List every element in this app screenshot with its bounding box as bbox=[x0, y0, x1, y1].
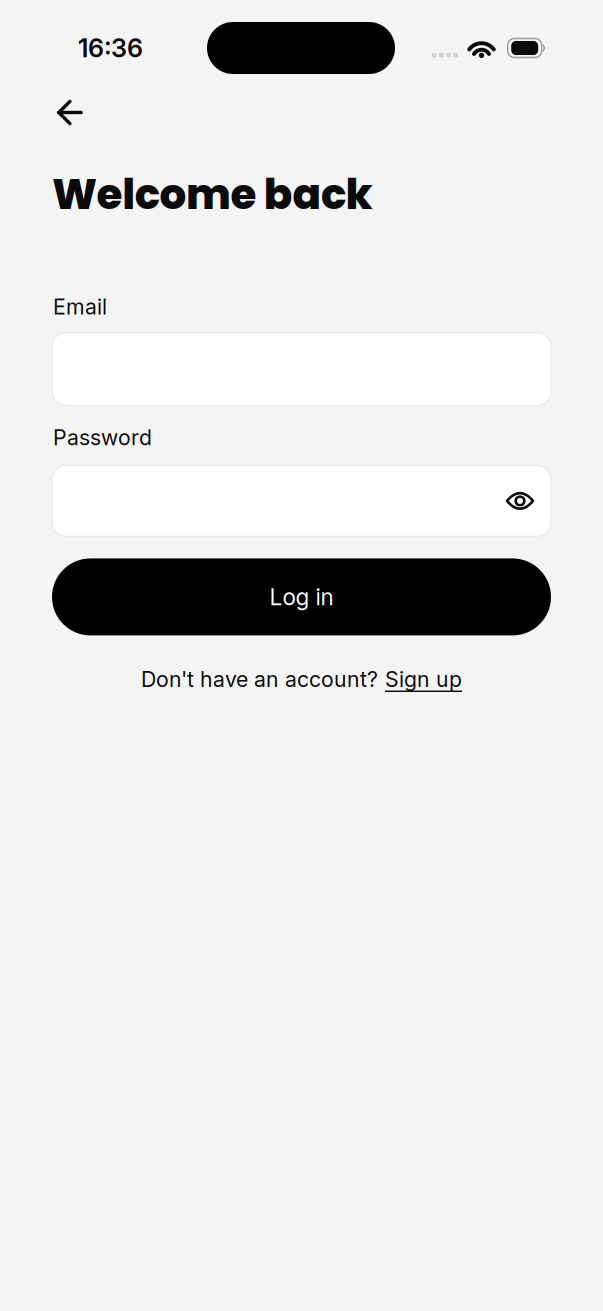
staticText: Welcome back bbox=[52, 165, 373, 224]
button[interactable]: Don't have an account? bbox=[141, 666, 462, 692]
staticText: Sign up bbox=[385, 666, 462, 692]
staticText: Don't have an account? bbox=[141, 666, 378, 692]
staticText: Password bbox=[53, 425, 152, 450]
staticText: Email bbox=[53, 294, 107, 320]
staticText: Log in bbox=[269, 583, 333, 611]
button[interactable]: Back bbox=[44, 89, 96, 135]
staticText: 16:36 bbox=[78, 33, 143, 63]
button[interactable]: Log in bbox=[52, 558, 551, 635]
button[interactable]: Show password bbox=[497, 478, 543, 524]
